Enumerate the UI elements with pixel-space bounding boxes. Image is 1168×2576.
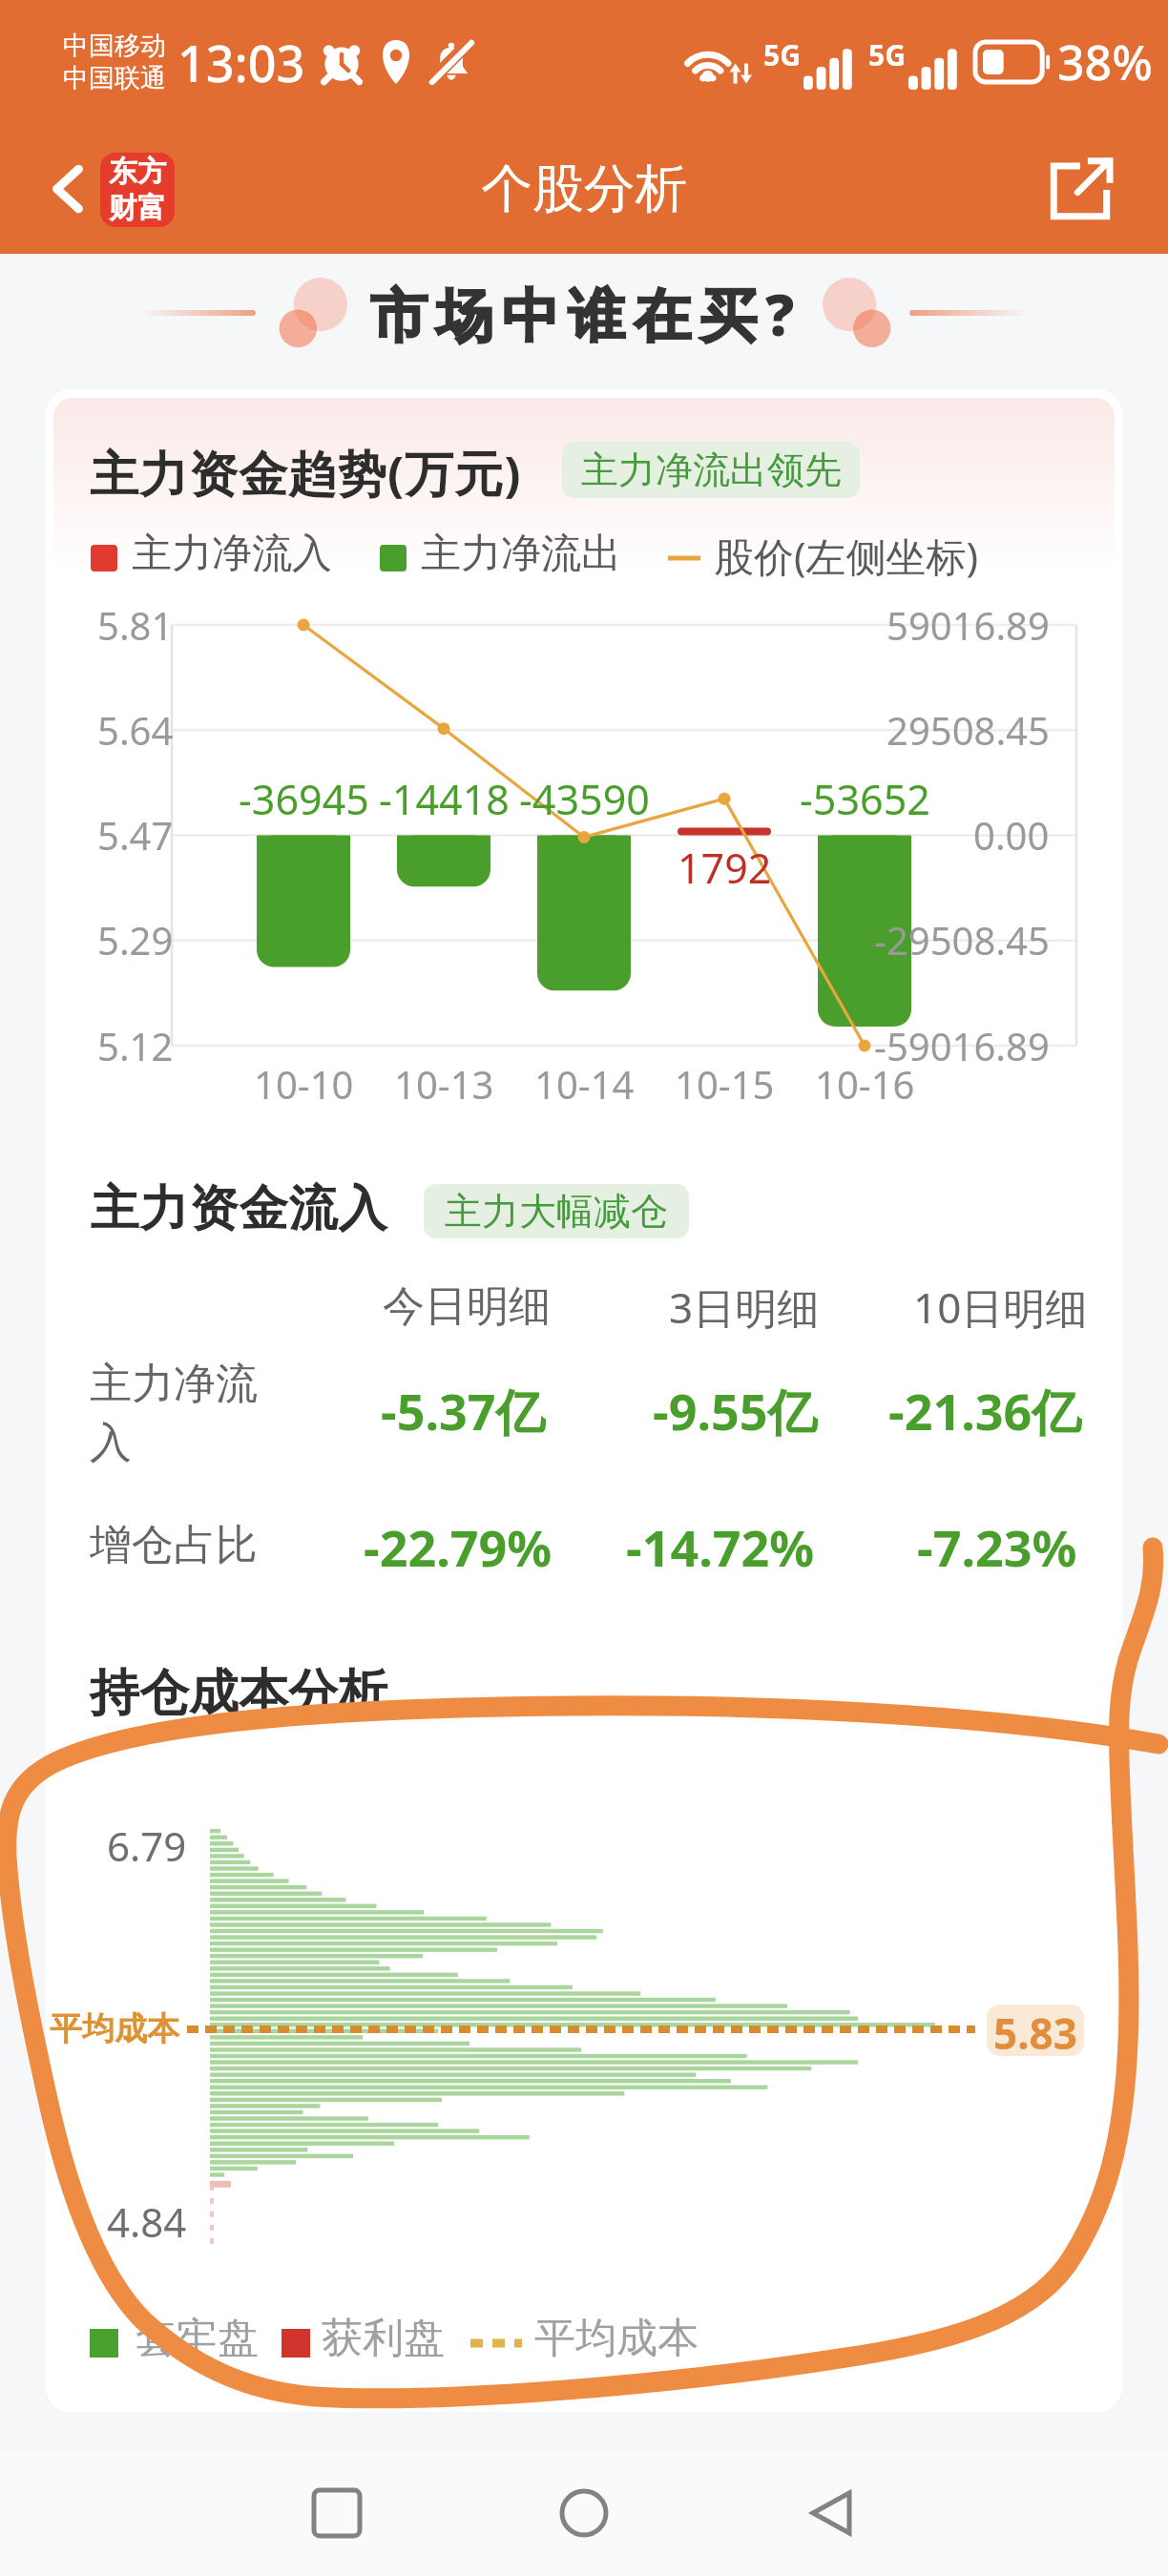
staticText: 平均成本	[534, 2313, 699, 2364]
staticText: 东方	[109, 154, 166, 190]
staticText: 5.81	[97, 599, 174, 651]
staticText: 5.12	[97, 1020, 174, 1071]
staticText: -53652	[800, 771, 930, 826]
staticText: -43590	[519, 771, 650, 826]
staticText: 中国联通	[63, 62, 166, 94]
staticText: 4.84	[107, 2194, 187, 2248]
staticText: -36945	[239, 771, 369, 826]
staticText: 持仓成本分析	[90, 1662, 387, 1725]
staticText: -14.72%	[626, 1513, 815, 1576]
staticText: 29508.45	[886, 704, 1050, 756]
staticText: 1792	[678, 840, 772, 895]
staticText: 0.00	[973, 809, 1050, 861]
staticText: 5G	[868, 35, 906, 74]
staticText: -22.79%	[364, 1513, 553, 1576]
staticText: 财富	[109, 190, 166, 226]
staticText: 市场中谁在买?	[370, 275, 803, 353]
staticText: 主力净流出	[421, 529, 621, 579]
staticText: 10-14	[534, 1058, 635, 1110]
staticText: 5.29	[97, 914, 174, 966]
button[interactable]: Home	[536, 2465, 632, 2561]
staticText: 主力净流入	[90, 1358, 271, 1469]
button[interactable]: Back	[32, 155, 101, 223]
staticText: 获利盘	[322, 2313, 445, 2364]
staticText: -5.37亿	[381, 1377, 546, 1440]
staticText: 10-10	[254, 1058, 354, 1110]
staticText: 套牢盘	[136, 2313, 259, 2364]
staticText: -29508.45	[874, 914, 1050, 966]
staticText: 3日明细	[669, 1278, 820, 1334]
staticText: 10日明细	[913, 1278, 1088, 1334]
staticText: 6.79	[107, 1818, 187, 1872]
staticText: 38%	[1057, 30, 1153, 94]
staticText: 10-13	[394, 1058, 494, 1110]
staticText: -9.55亿	[653, 1377, 818, 1440]
staticText: 主力资金趋势(万元)	[90, 439, 522, 506]
staticText: -59016.89	[874, 1020, 1050, 1071]
staticText: 平均成本	[50, 2008, 179, 2049]
staticText: 5.47	[97, 809, 174, 861]
staticText: 59016.89	[886, 599, 1050, 651]
staticText: 主力资金流入	[90, 1178, 387, 1239]
staticText: 10-16	[815, 1058, 915, 1110]
staticText: 主力大幅减仓	[445, 1188, 668, 1235]
staticText: 个股分析	[481, 156, 687, 221]
button[interactable]: Back	[784, 2465, 880, 2561]
staticText: 今日明细	[383, 1280, 551, 1333]
staticText: 中国移动	[63, 30, 166, 62]
staticText: 5.64	[97, 704, 174, 756]
staticText: -21.36亿	[888, 1377, 1082, 1440]
staticText: -14418	[379, 771, 510, 826]
staticText: 增仓占比	[90, 1519, 258, 1571]
button[interactable]: Share	[1040, 150, 1120, 230]
staticText: 5.83	[993, 2005, 1077, 2056]
staticText: -7.23%	[917, 1513, 1077, 1576]
staticText: 5G	[763, 35, 801, 74]
staticText: 13:03	[177, 29, 305, 96]
staticText: 主力净流入	[132, 529, 332, 579]
button[interactable]: Recents	[289, 2465, 385, 2561]
staticText: 主力净流出领先	[581, 447, 842, 493]
button[interactable]: East Money	[100, 153, 175, 227]
staticText: 10-15	[675, 1058, 775, 1110]
staticText: 股价(左侧坐标)	[714, 529, 979, 583]
